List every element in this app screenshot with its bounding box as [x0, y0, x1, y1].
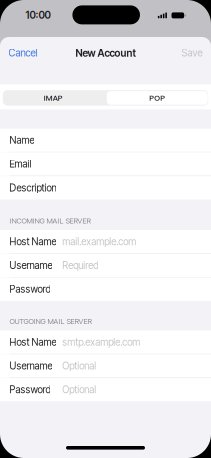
staticText: Description — [9, 182, 56, 194]
button[interactable]: Cancel — [9, 43, 51, 63]
staticText: Host Name — [9, 236, 56, 248]
staticText: Host Name — [9, 336, 56, 348]
staticText: New Account — [75, 47, 135, 59]
staticText: Cancel — [9, 47, 38, 59]
button[interactable]: Host Name — [0, 330, 211, 354]
staticText: Optional — [62, 384, 96, 396]
button[interactable]: IMAP — [3, 90, 104, 106]
staticText: Username — [9, 360, 52, 372]
button[interactable]: Password — [0, 278, 211, 301]
button[interactable]: Email — [0, 152, 211, 176]
staticText: mail.example.com — [62, 236, 136, 248]
button[interactable]: Save — [168, 43, 202, 63]
button[interactable]: Description — [0, 176, 211, 199]
staticText: 10:00 — [25, 9, 50, 21]
staticText: Email — [9, 158, 31, 170]
button[interactable]: Host Name — [0, 230, 211, 253]
staticText: INCOMING MAIL SERVER — [9, 216, 90, 225]
button[interactable]: POP — [107, 91, 208, 105]
staticText: smtp.example.com — [62, 336, 140, 348]
staticText: OUTGOING MAIL SERVER — [9, 317, 91, 326]
button[interactable]: Username — [0, 354, 211, 378]
staticText: IMAP — [44, 93, 63, 103]
button[interactable]: Name — [0, 129, 211, 152]
staticText: Password — [9, 384, 50, 396]
staticText: Password — [9, 283, 50, 295]
staticText: Name — [9, 134, 34, 146]
staticText: Required — [62, 260, 98, 271]
staticText: POP — [149, 93, 165, 103]
staticText: Username — [9, 260, 52, 271]
button[interactable]: Username — [0, 254, 211, 277]
staticText: Save — [181, 47, 202, 59]
staticText: Optional — [62, 360, 96, 372]
button[interactable]: Password — [0, 378, 211, 401]
